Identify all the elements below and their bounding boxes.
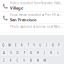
staticText: Photo captured at sunrise near Mono Lake bbox=[10, 25, 62, 28]
staticText: C bbox=[16, 59, 18, 62]
button[interactable]: L bbox=[55, 50, 61, 56]
button[interactable]: N bbox=[35, 58, 41, 63]
staticText: H bbox=[37, 51, 39, 55]
staticText: R bbox=[21, 44, 23, 47]
button[interactable]: O bbox=[50, 43, 55, 48]
staticText: I bbox=[46, 44, 47, 47]
staticText: O bbox=[52, 44, 54, 47]
button[interactable]: R bbox=[19, 43, 24, 48]
button[interactable]: D bbox=[14, 50, 20, 56]
staticText: Voice memo recorded at Pier 39 at Fisher… bbox=[10, 13, 62, 17]
button[interactable]: W bbox=[7, 43, 12, 48]
staticText: L bbox=[57, 51, 58, 55]
button[interactable]: B bbox=[28, 58, 34, 63]
staticText: X bbox=[10, 59, 12, 62]
staticText: W bbox=[8, 44, 10, 47]
staticText: A bbox=[3, 51, 5, 55]
button[interactable]: E bbox=[13, 43, 18, 48]
staticText: U bbox=[39, 44, 41, 47]
button[interactable]: U bbox=[38, 43, 43, 48]
button[interactable]: K bbox=[48, 50, 54, 56]
button[interactable]: M bbox=[41, 58, 47, 63]
button[interactable]: I bbox=[44, 43, 49, 48]
staticText: S bbox=[10, 51, 11, 55]
staticText: E bbox=[15, 44, 16, 47]
staticText: M bbox=[43, 59, 45, 62]
button[interactable]: X bbox=[8, 58, 14, 63]
button[interactable]: V bbox=[21, 58, 27, 63]
button[interactable]: Voice memo recorded at Pier 39 at Fisher… bbox=[0, 12, 64, 23]
staticText: J bbox=[44, 51, 45, 55]
button[interactable]: J bbox=[41, 50, 47, 56]
button[interactable]: P bbox=[56, 43, 62, 48]
button[interactable]: G bbox=[28, 50, 34, 56]
staticText: Z bbox=[3, 59, 5, 62]
staticText: San Francisco bbox=[10, 17, 36, 22]
staticText: N bbox=[37, 59, 39, 62]
staticText: Village bbox=[10, 5, 23, 11]
button[interactable]: Video recorded from Yosemite Valley in 2… bbox=[0, 0, 64, 11]
button[interactable]: T bbox=[25, 43, 31, 48]
staticText: D bbox=[16, 51, 18, 55]
staticText: Y bbox=[33, 44, 35, 47]
button[interactable]: H bbox=[35, 50, 41, 56]
staticText: Video recorded from Yosemite Valley in 2… bbox=[10, 1, 62, 5]
button[interactable]: A bbox=[1, 50, 7, 56]
staticText: V bbox=[23, 59, 25, 62]
button[interactable]: F bbox=[21, 50, 27, 56]
button[interactable]: Z bbox=[1, 58, 7, 63]
button[interactable]: Y bbox=[31, 43, 37, 48]
staticText: K bbox=[50, 51, 52, 55]
staticText: G bbox=[30, 51, 32, 55]
button[interactable]: C bbox=[14, 58, 20, 63]
staticText: Q bbox=[2, 44, 4, 47]
staticText: T bbox=[27, 44, 28, 47]
staticText: F bbox=[24, 51, 25, 55]
button[interactable]: S bbox=[8, 50, 14, 56]
button[interactable]: Photo captured at sunrise near Mono Lake bbox=[0, 24, 64, 35]
staticText: P bbox=[58, 44, 60, 47]
staticText: B bbox=[30, 59, 32, 62]
button[interactable]: Q bbox=[0, 43, 6, 48]
